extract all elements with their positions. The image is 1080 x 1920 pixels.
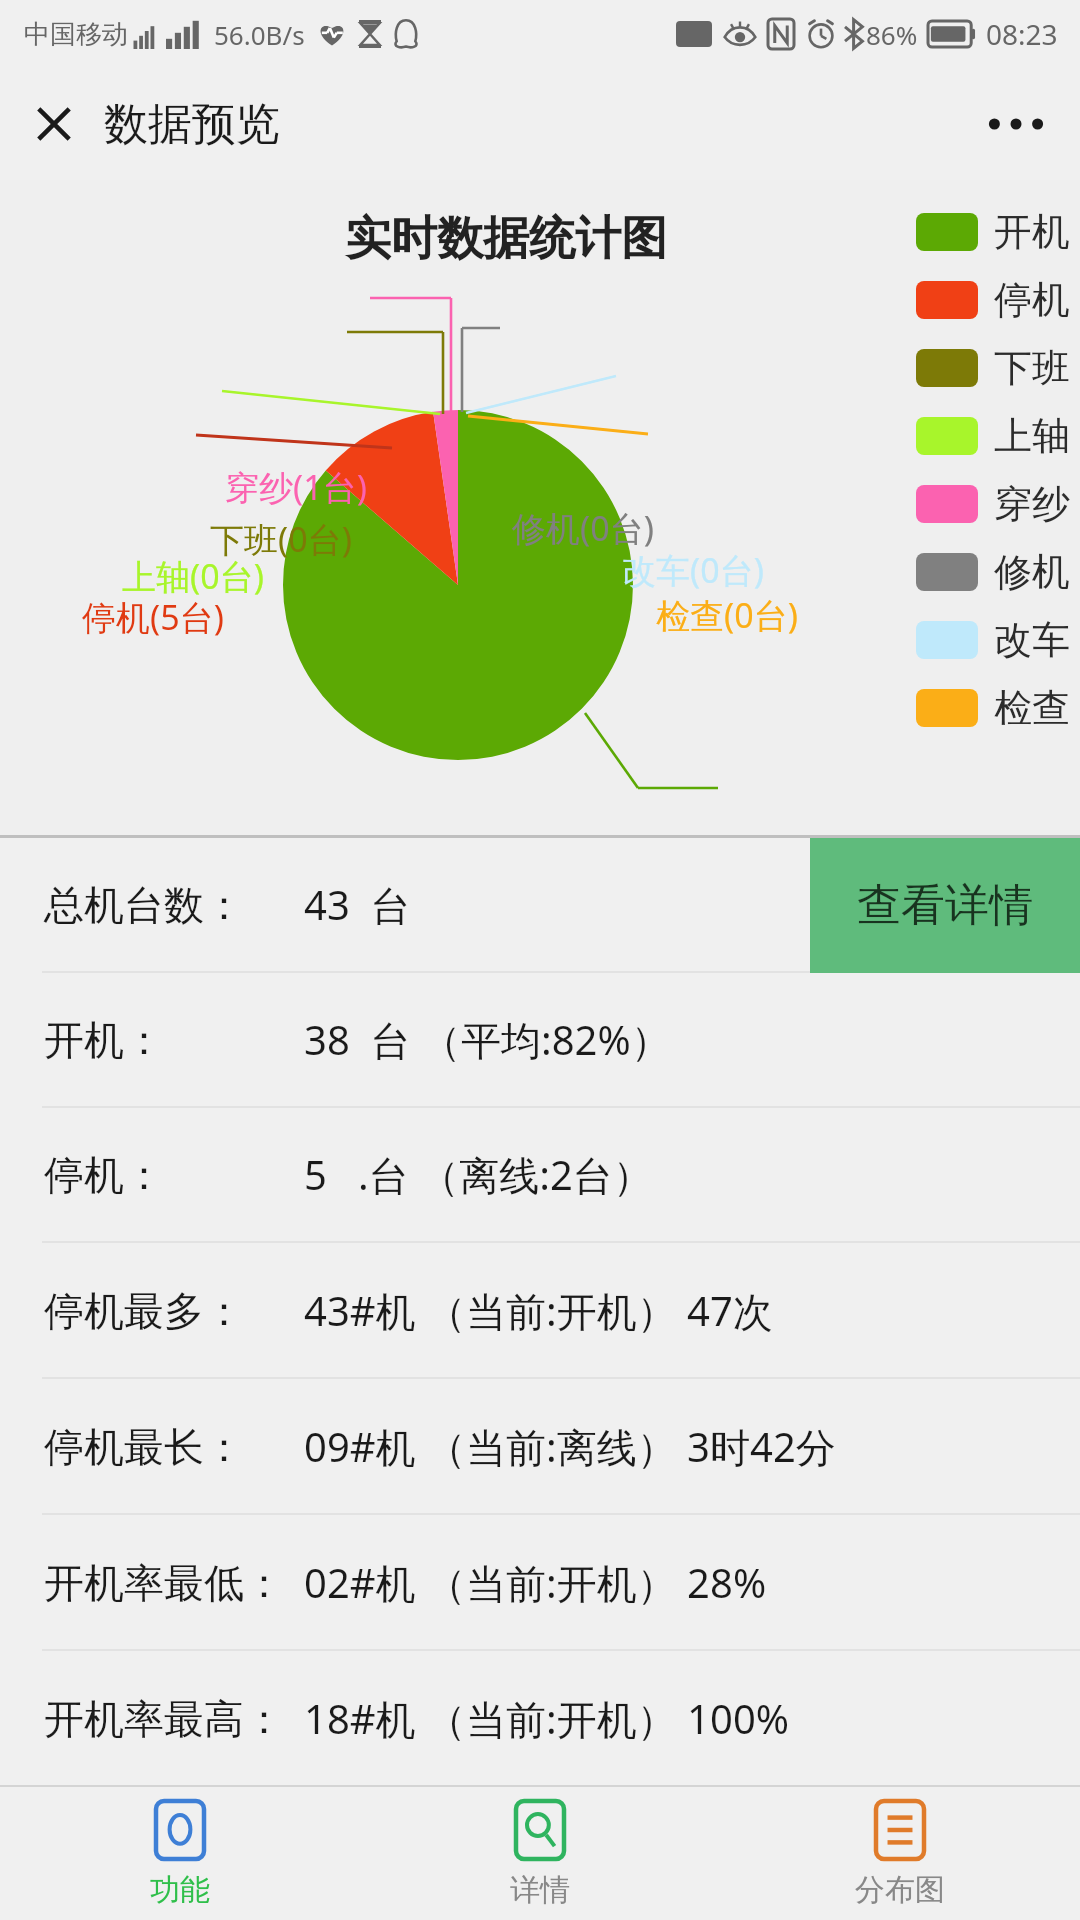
button[interactable]: 开机率最高：: [0, 1651, 1080, 1785]
staticText: 09#机 （当前:离线） 3时42分: [304, 1419, 836, 1474]
button[interactable]: 停机最多：: [0, 1243, 1080, 1377]
button[interactable]: 总机台数：: [0, 838, 1080, 971]
staticText: 穿纱(1台): [225, 464, 367, 510]
staticText: 停机: [994, 276, 1070, 324]
staticText: 下班: [994, 344, 1070, 392]
staticText: 5 .台 （离线:2台）: [304, 1147, 653, 1202]
button[interactable]: 停机最长：: [0, 1379, 1080, 1513]
staticText: 38 台 （平均:82%）: [304, 1012, 671, 1067]
staticText: 18#机 （当前:开机） 100%: [304, 1691, 789, 1746]
staticText: 86%: [866, 17, 918, 52]
staticText: 穿纱: [994, 480, 1070, 528]
staticText: 总机台数：: [44, 880, 294, 930]
button[interactable]: 停机：: [0, 1108, 1080, 1241]
button[interactable]: 分布图: [720, 1787, 1080, 1920]
staticText: 修机(0台): [512, 505, 654, 551]
button[interactable]: 开机率最低：: [0, 1515, 1080, 1649]
button[interactable]: 功能: [0, 1787, 360, 1920]
staticText: 改车: [994, 616, 1070, 664]
staticText: 56.0B/s: [214, 17, 305, 52]
staticText: 查看详情: [857, 878, 1033, 933]
staticText: 开机：: [44, 1015, 294, 1065]
button[interactable]: 查看详情: [810, 838, 1080, 973]
button[interactable]: 详情: [360, 1787, 720, 1920]
staticText: 检查(0台): [656, 592, 798, 638]
staticText: 停机：: [44, 1150, 294, 1200]
staticText: 02#机 （当前:开机） 28%: [304, 1555, 767, 1610]
staticText: 停机最多：: [44, 1286, 294, 1336]
staticText: 改车(0台): [622, 547, 764, 593]
button[interactable]: 开机：: [0, 973, 1080, 1106]
staticText: 修机: [994, 548, 1070, 596]
staticText: 43#机 （当前:开机） 47次: [304, 1283, 773, 1338]
staticText: 43 台: [304, 877, 411, 932]
staticText: 实时数据统计图: [345, 210, 667, 268]
staticText: 上轴(0台): [122, 553, 264, 599]
staticText: 数据预览: [104, 97, 280, 152]
staticText: 上轴: [994, 412, 1070, 460]
staticText: 下班(0台): [210, 516, 352, 562]
button[interactable]: Close: [18, 88, 90, 160]
button[interactable]: More options: [976, 84, 1056, 164]
staticText: 开机率最高：: [44, 1694, 294, 1744]
staticText: 功能: [150, 1871, 210, 1909]
staticText: 中国移动: [24, 18, 128, 51]
staticText: 开机: [994, 208, 1070, 256]
staticText: 详情: [510, 1871, 570, 1909]
staticText: 开机率最低：: [44, 1558, 294, 1608]
staticText: 停机最长：: [44, 1422, 294, 1472]
staticText: 停机(5台): [82, 594, 224, 640]
staticText: 分布图: [855, 1871, 945, 1909]
staticText: 检查: [994, 684, 1070, 732]
staticText: 08:23: [986, 15, 1058, 53]
